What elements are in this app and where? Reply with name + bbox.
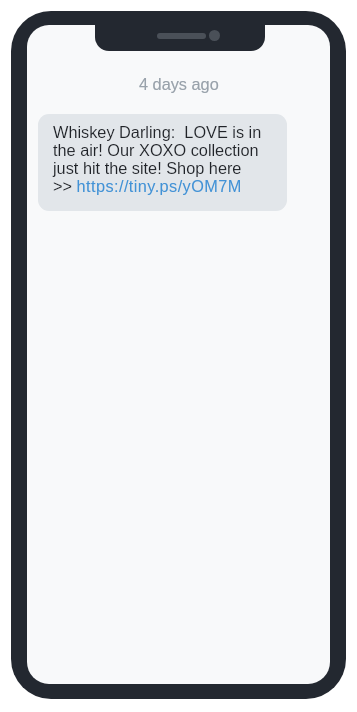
staticText: Whiskey Darling: LOVE is in xyxy=(53,123,262,141)
button[interactable]: Whiskey Darling: LOVE is in xyxy=(38,114,287,211)
staticText: just hit the site! Shop here xyxy=(53,159,242,177)
staticText: the air! Our XOXO collection xyxy=(53,141,259,159)
staticText: 4 days ago xyxy=(139,75,219,93)
staticText: >> https://tiny.ps/yOM7M xyxy=(53,177,242,195)
